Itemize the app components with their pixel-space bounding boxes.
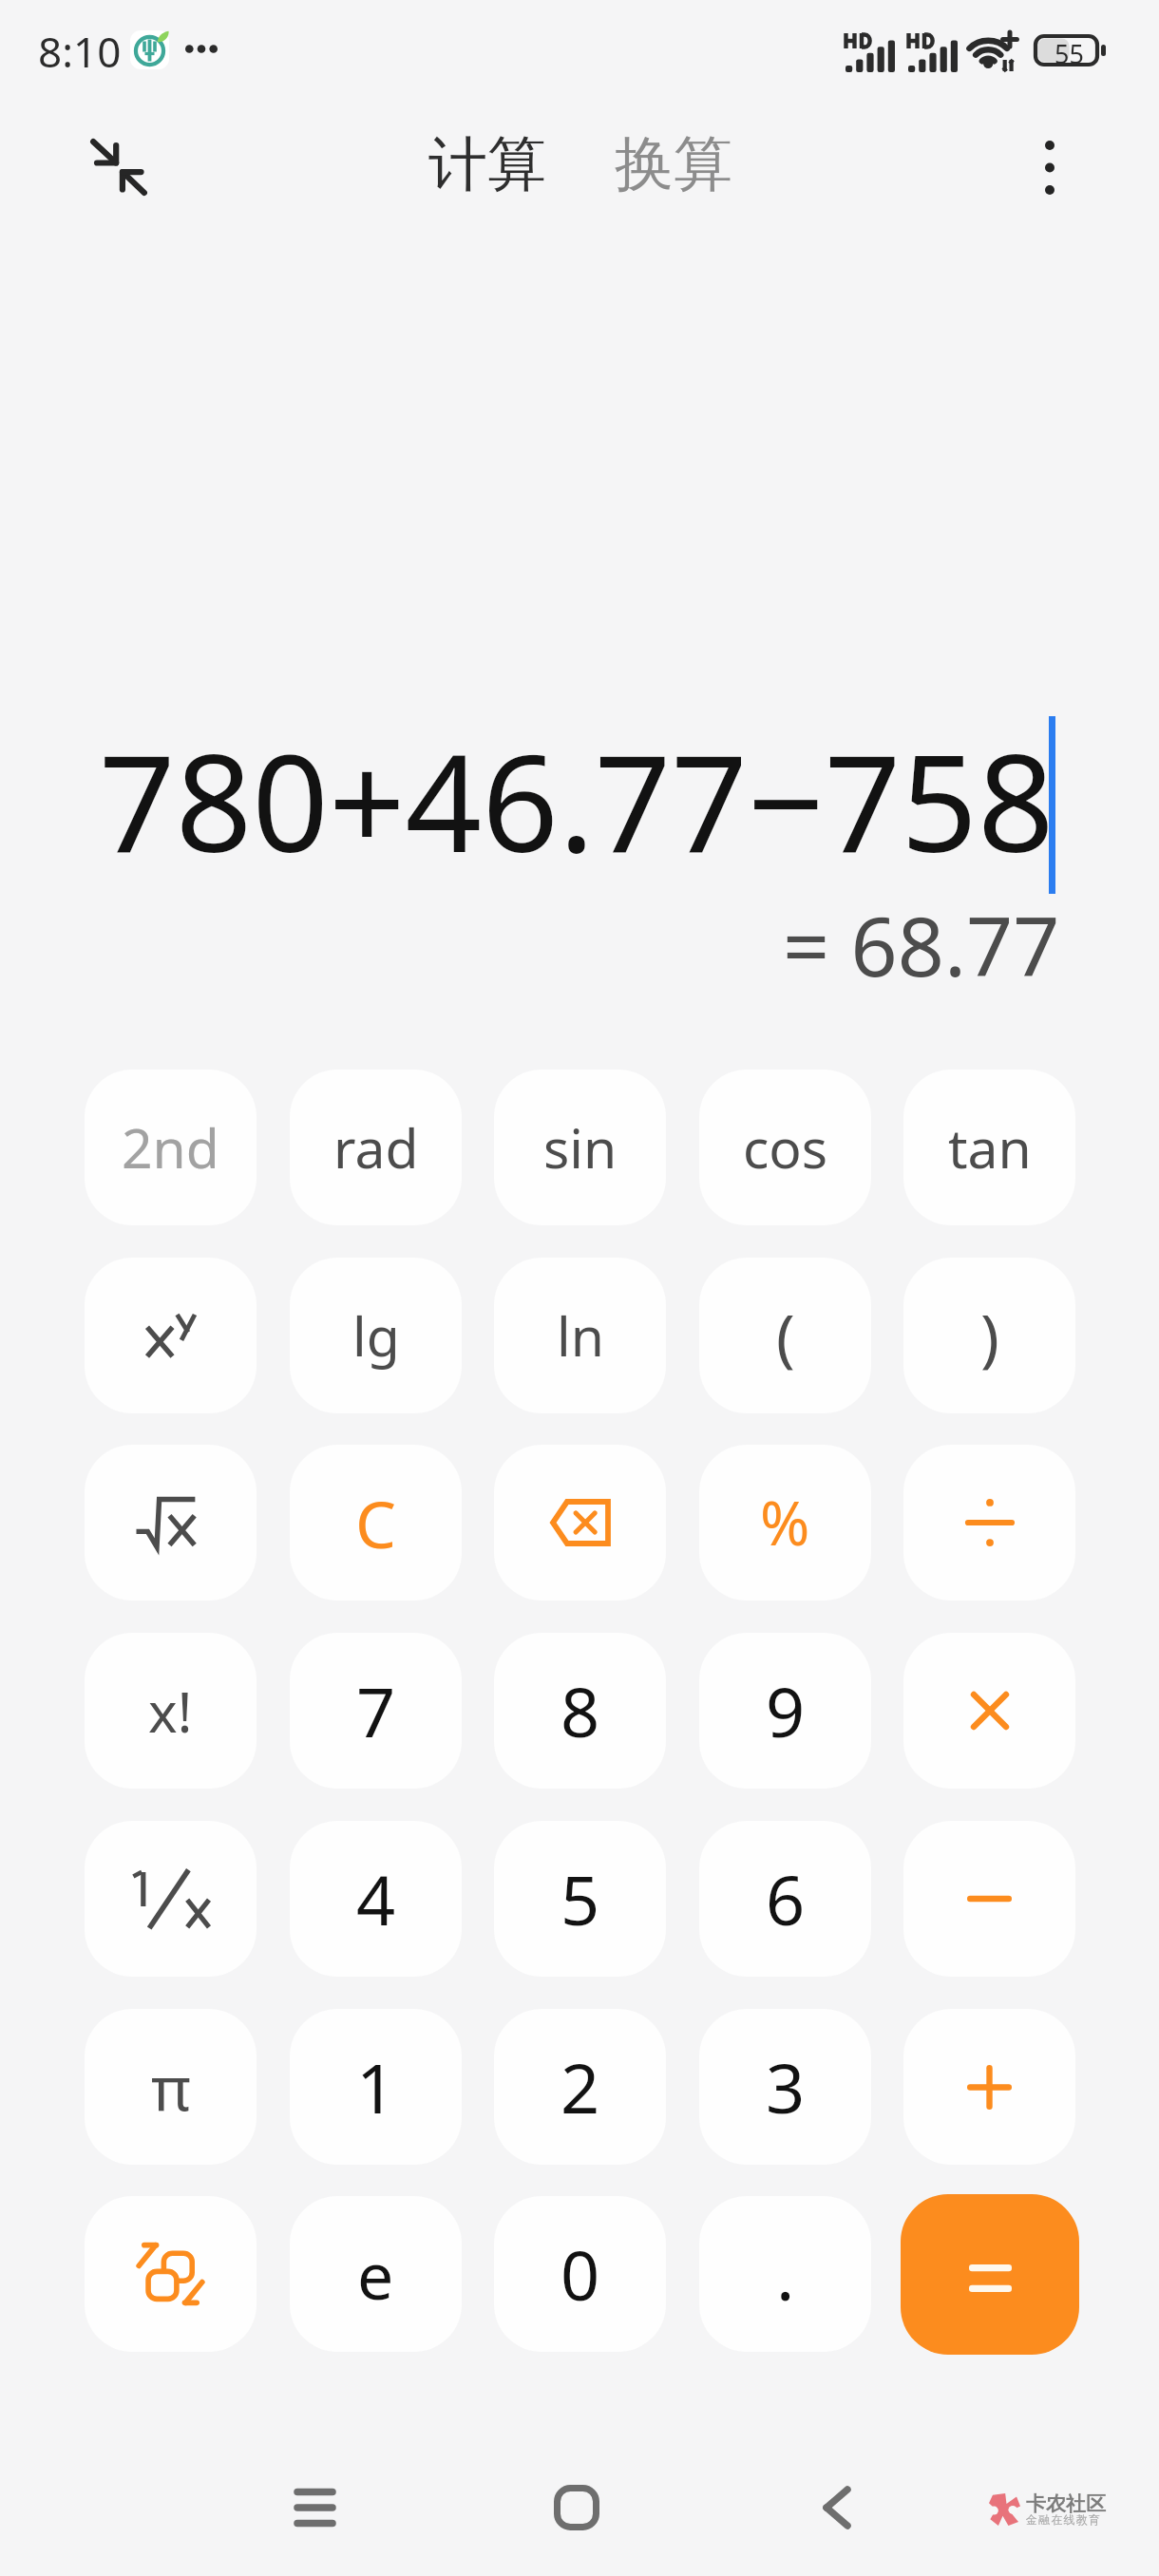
staticText: C [355, 1479, 396, 1567]
staticText: 换算 [615, 127, 732, 201]
button[interactable]: rad [290, 1070, 462, 1225]
button[interactable]: C [290, 1445, 462, 1601]
button[interactable] [85, 1821, 256, 1977]
button[interactable]: 5 [494, 1821, 666, 1977]
staticText: = 68.77 [783, 889, 1060, 1000]
button[interactable]: tan [903, 1070, 1075, 1225]
other: Equals [969, 2264, 1012, 2292]
staticText: 2 [560, 2040, 600, 2133]
staticText: e [357, 2230, 394, 2319]
button[interactable]: 2nd [85, 1070, 256, 1225]
staticText: 2nd [122, 1110, 219, 1184]
button[interactable]: Recents [238, 2460, 390, 2555]
button[interactable]: Home [501, 2460, 653, 2555]
staticText: 4 [356, 1852, 396, 1945]
staticText: 9 [766, 1664, 806, 1757]
button[interactable]: Plus [903, 2009, 1075, 2165]
staticText: rad [333, 1110, 419, 1184]
button[interactable]: Multiply [903, 1633, 1075, 1789]
button[interactable]: Collapse [82, 130, 156, 204]
button[interactable]: 3 [699, 2009, 871, 2165]
staticText: ) [980, 1293, 999, 1378]
button[interactable]: 9 [699, 1633, 871, 1789]
button[interactable] [85, 1258, 256, 1413]
button[interactable]: 1 [290, 2009, 462, 2165]
button[interactable]: π [85, 2009, 256, 2165]
staticText: cos [743, 1110, 828, 1184]
other: Scientific mode [137, 2243, 204, 2305]
button[interactable]: ( [699, 1258, 871, 1413]
button[interactable]: 计算 [428, 127, 546, 201]
button[interactable]: lg [290, 1258, 462, 1413]
other: Multiply [971, 1692, 1009, 1730]
button[interactable] [85, 1445, 256, 1601]
button[interactable]: 2 [494, 2009, 666, 2165]
button[interactable]: Minus [903, 1821, 1075, 1977]
staticText: 780+46.77−758 [99, 709, 1054, 891]
staticText: ( [776, 1293, 795, 1378]
staticText: 55 [1054, 36, 1084, 68]
staticText: π [151, 2046, 191, 2129]
button[interactable]: % [699, 1445, 871, 1601]
staticText: % [760, 1482, 810, 1563]
staticText: 7 [356, 1664, 396, 1757]
staticText: 0 [560, 2227, 600, 2320]
staticText: 计算 [428, 127, 546, 201]
staticText: 3 [766, 2040, 806, 2133]
staticText: 8 [560, 1664, 600, 1757]
button[interactable]: Backspace [494, 1445, 666, 1601]
staticText: 8:10 [38, 23, 122, 80]
button[interactable]: 换算 [615, 127, 732, 201]
button[interactable]: 4 [290, 1821, 462, 1977]
button[interactable]: . [699, 2196, 871, 2352]
button[interactable]: 6 [699, 1821, 871, 1977]
staticText: 1 [356, 2040, 396, 2133]
staticText: 金融在线教育 [1026, 2512, 1102, 2527]
button[interactable]: More options [1013, 130, 1087, 204]
button[interactable]: Equals [901, 2194, 1079, 2355]
staticText: 5 [560, 1852, 600, 1945]
button[interactable]: x! [85, 1633, 256, 1789]
staticText: tan [948, 1110, 1032, 1184]
staticText: sin [543, 1110, 617, 1184]
button[interactable]: sin [494, 1070, 666, 1225]
staticText: lg [352, 1298, 400, 1373]
button[interactable]: Scientific mode [85, 2196, 256, 2352]
staticText: x! [148, 1674, 193, 1749]
staticText: . [776, 2227, 795, 2320]
button[interactable]: ) [903, 1258, 1075, 1413]
button[interactable]: 8 [494, 1633, 666, 1789]
button[interactable]: Back [761, 2460, 913, 2555]
staticText: 6 [766, 1852, 806, 1945]
other: Minus [967, 1895, 1012, 1903]
button[interactable]: e [290, 2196, 462, 2352]
other: Divide [965, 1499, 1015, 1546]
staticText: 卡农社区 [1026, 2491, 1106, 2516]
button[interactable]: 0 [494, 2196, 666, 2352]
button[interactable]: Divide [903, 1445, 1075, 1601]
button[interactable]: ln [494, 1258, 666, 1413]
staticText: ln [557, 1298, 604, 1373]
button[interactable]: 7 [290, 1633, 462, 1789]
button[interactable]: cos [699, 1070, 871, 1225]
other: Plus [967, 2065, 1012, 2110]
other: Backspace [550, 1499, 611, 1546]
